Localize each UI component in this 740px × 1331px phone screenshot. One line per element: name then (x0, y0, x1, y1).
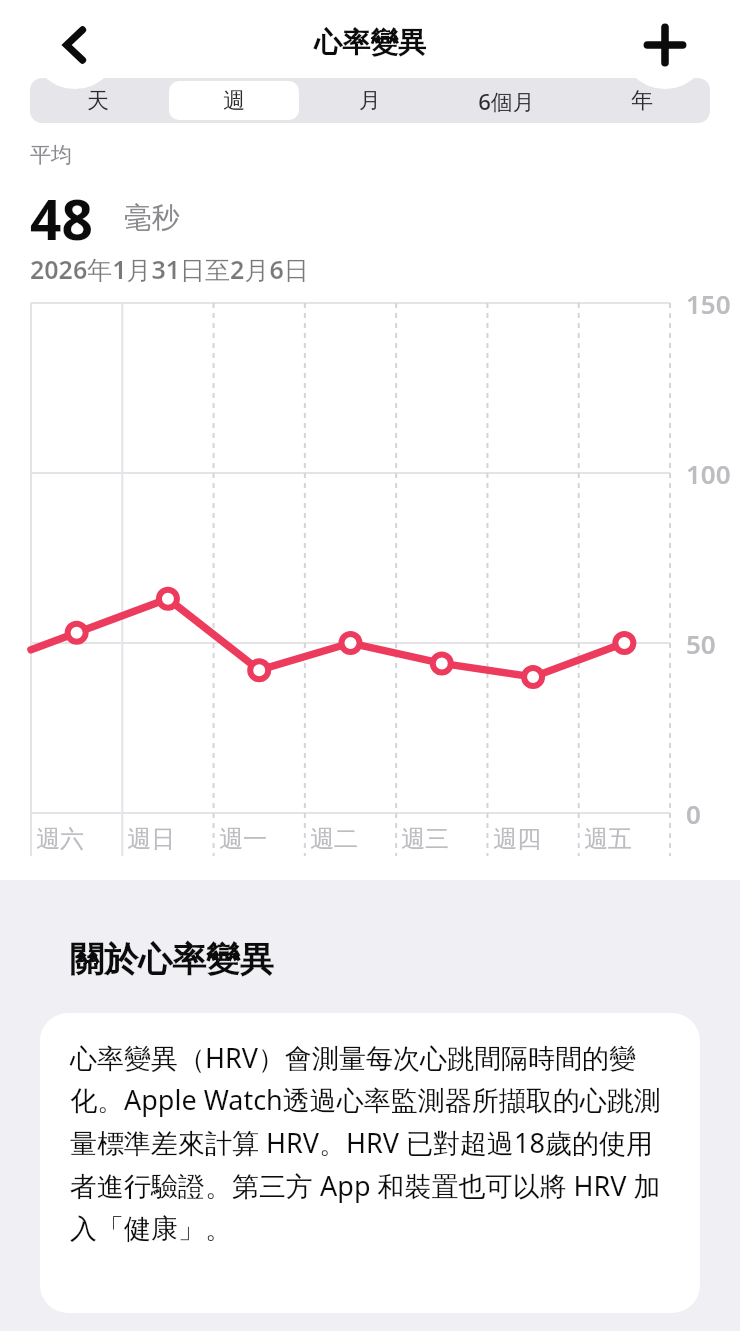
staticText: 0 (686, 796, 701, 831)
staticText: 50 (686, 626, 716, 661)
staticText: 平均 (30, 142, 72, 168)
button[interactable]: 心率變異（HRV）會測量每次心跳間隔時間的變化。Apple Watch透過心率監… (40, 1013, 700, 1313)
staticText: 月 (359, 87, 381, 115)
button[interactable]: Add (621, 1, 709, 89)
button[interactable]: 6個月 (441, 81, 571, 120)
button[interactable]: 週 (169, 81, 299, 120)
staticText: 週日 (127, 824, 175, 854)
button[interactable]: Back (31, 1, 119, 89)
button[interactable]: 天 (33, 81, 163, 120)
staticText: 150 (686, 286, 731, 321)
staticText: 心率變異（HRV）會測量每次心跳間隔時間的變化。Apple Watch透過心率監… (70, 1039, 670, 1246)
staticText: 2026年1月31日至2月6日 (30, 252, 309, 286)
staticText: 毫秒 (124, 200, 180, 235)
staticText: 天 (87, 87, 109, 115)
staticText: 週二 (310, 824, 358, 854)
staticText: 週三 (401, 824, 449, 854)
staticText: 週五 (584, 824, 632, 854)
staticText: 心率變異 (0, 25, 740, 60)
button[interactable]: 年 (577, 81, 707, 120)
staticText: 關於心率變異 (70, 938, 274, 981)
button[interactable]: 月 (305, 81, 435, 120)
staticText: 週 (223, 87, 245, 115)
staticText: 週四 (493, 824, 541, 854)
staticText: 48 (30, 181, 93, 256)
staticText: 年 (631, 87, 653, 115)
staticText: 6個月 (478, 86, 535, 116)
staticText: 100 (686, 456, 731, 491)
staticText: 週一 (219, 824, 267, 854)
staticText: 週六 (36, 824, 84, 854)
